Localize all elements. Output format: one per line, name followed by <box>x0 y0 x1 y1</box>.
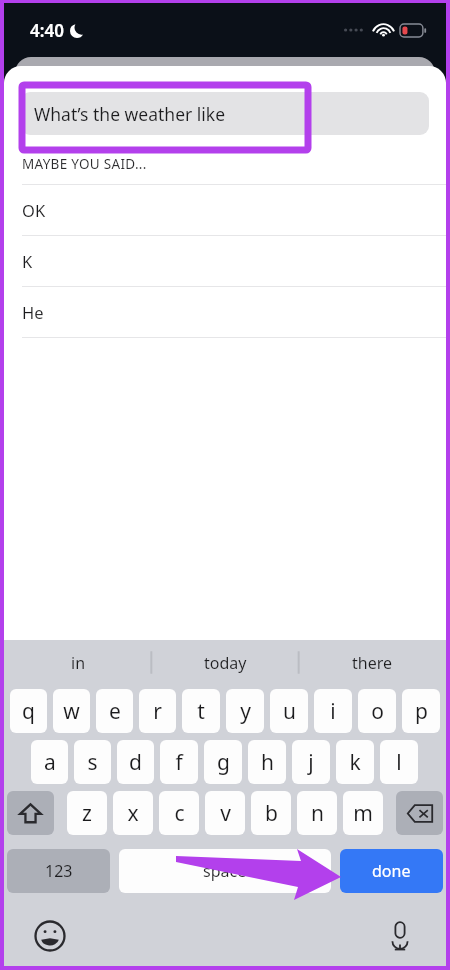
button[interactable]: d <box>117 740 154 784</box>
button[interactable]: 123 <box>7 849 110 893</box>
staticText: MAYBE YOU SAID... <box>22 155 147 173</box>
button[interactable]: x <box>113 791 153 835</box>
button[interactable]: s <box>74 740 111 784</box>
staticText: in <box>71 652 86 674</box>
button[interactable]: Emoji <box>28 914 72 958</box>
button[interactable]: there <box>299 640 446 685</box>
staticText: 123 <box>45 860 73 882</box>
button[interactable]: w <box>53 689 90 733</box>
staticText: k <box>349 748 361 777</box>
button[interactable]: a <box>31 740 68 784</box>
staticText: a <box>44 748 56 777</box>
button[interactable]: Shift <box>7 791 54 835</box>
button[interactable]: Dictation <box>378 914 422 958</box>
button[interactable]: c <box>159 791 199 835</box>
button[interactable]: u <box>270 689 308 733</box>
button[interactable]: b <box>251 791 291 835</box>
button[interactable]: He <box>4 287 446 337</box>
button[interactable]: f <box>160 740 198 784</box>
staticText: K <box>22 250 33 272</box>
button[interactable]: y <box>226 689 264 733</box>
staticText: p <box>415 697 428 726</box>
staticText: l <box>396 748 402 777</box>
staticText: e <box>109 697 121 726</box>
staticText: o <box>371 697 384 726</box>
staticText: r <box>153 697 162 726</box>
staticText: OK <box>22 199 46 221</box>
staticText: z <box>82 799 92 828</box>
staticText: s <box>87 748 98 777</box>
staticText: h <box>261 748 274 777</box>
button[interactable]: OK <box>4 185 446 235</box>
button[interactable]: done <box>340 849 443 893</box>
button[interactable]: What’s the weather like <box>21 92 429 135</box>
button[interactable]: r <box>139 689 176 733</box>
button[interactable]: v <box>205 791 245 835</box>
staticText: v <box>220 799 231 828</box>
staticText: y <box>240 697 251 726</box>
button[interactable]: p <box>402 689 440 733</box>
staticText: c <box>174 799 185 828</box>
button[interactable]: K <box>4 236 446 286</box>
button[interactable]: q <box>10 689 47 733</box>
button[interactable]: h <box>248 740 286 784</box>
button[interactable]: m <box>343 791 383 835</box>
staticText: q <box>22 697 35 726</box>
staticText: g <box>217 748 230 777</box>
staticText: He <box>22 301 44 323</box>
button[interactable]: t <box>182 689 220 733</box>
button[interactable]: e <box>96 689 133 733</box>
staticText: t <box>197 697 205 726</box>
staticText: d <box>129 748 142 777</box>
button[interactable]: i <box>314 689 352 733</box>
button[interactable]: o <box>358 689 396 733</box>
staticText: done <box>372 860 411 882</box>
button[interactable]: n <box>297 791 337 835</box>
staticText: there <box>352 652 393 674</box>
button[interactable]: z <box>67 791 107 835</box>
staticText: f <box>175 748 183 777</box>
staticText: w <box>63 697 80 726</box>
staticText: u <box>283 697 296 726</box>
staticText: n <box>311 799 324 828</box>
button[interactable]: g <box>204 740 242 784</box>
staticText: j <box>308 748 314 777</box>
staticText: b <box>265 799 278 828</box>
button[interactable]: j <box>292 740 330 784</box>
staticText: 4:40 <box>30 19 64 42</box>
staticText: i <box>330 697 336 726</box>
button[interactable]: space <box>119 849 331 893</box>
button[interactable]: Backspace <box>396 791 443 835</box>
button[interactable]: k <box>336 740 374 784</box>
button[interactable]: in <box>4 640 152 685</box>
staticText: x <box>127 799 139 828</box>
button[interactable]: today <box>152 640 299 685</box>
staticText: space <box>203 860 247 882</box>
staticText: today <box>204 652 247 674</box>
staticText: What’s the weather like <box>34 102 226 126</box>
button[interactable]: l <box>380 740 418 784</box>
staticText: m <box>353 799 373 828</box>
